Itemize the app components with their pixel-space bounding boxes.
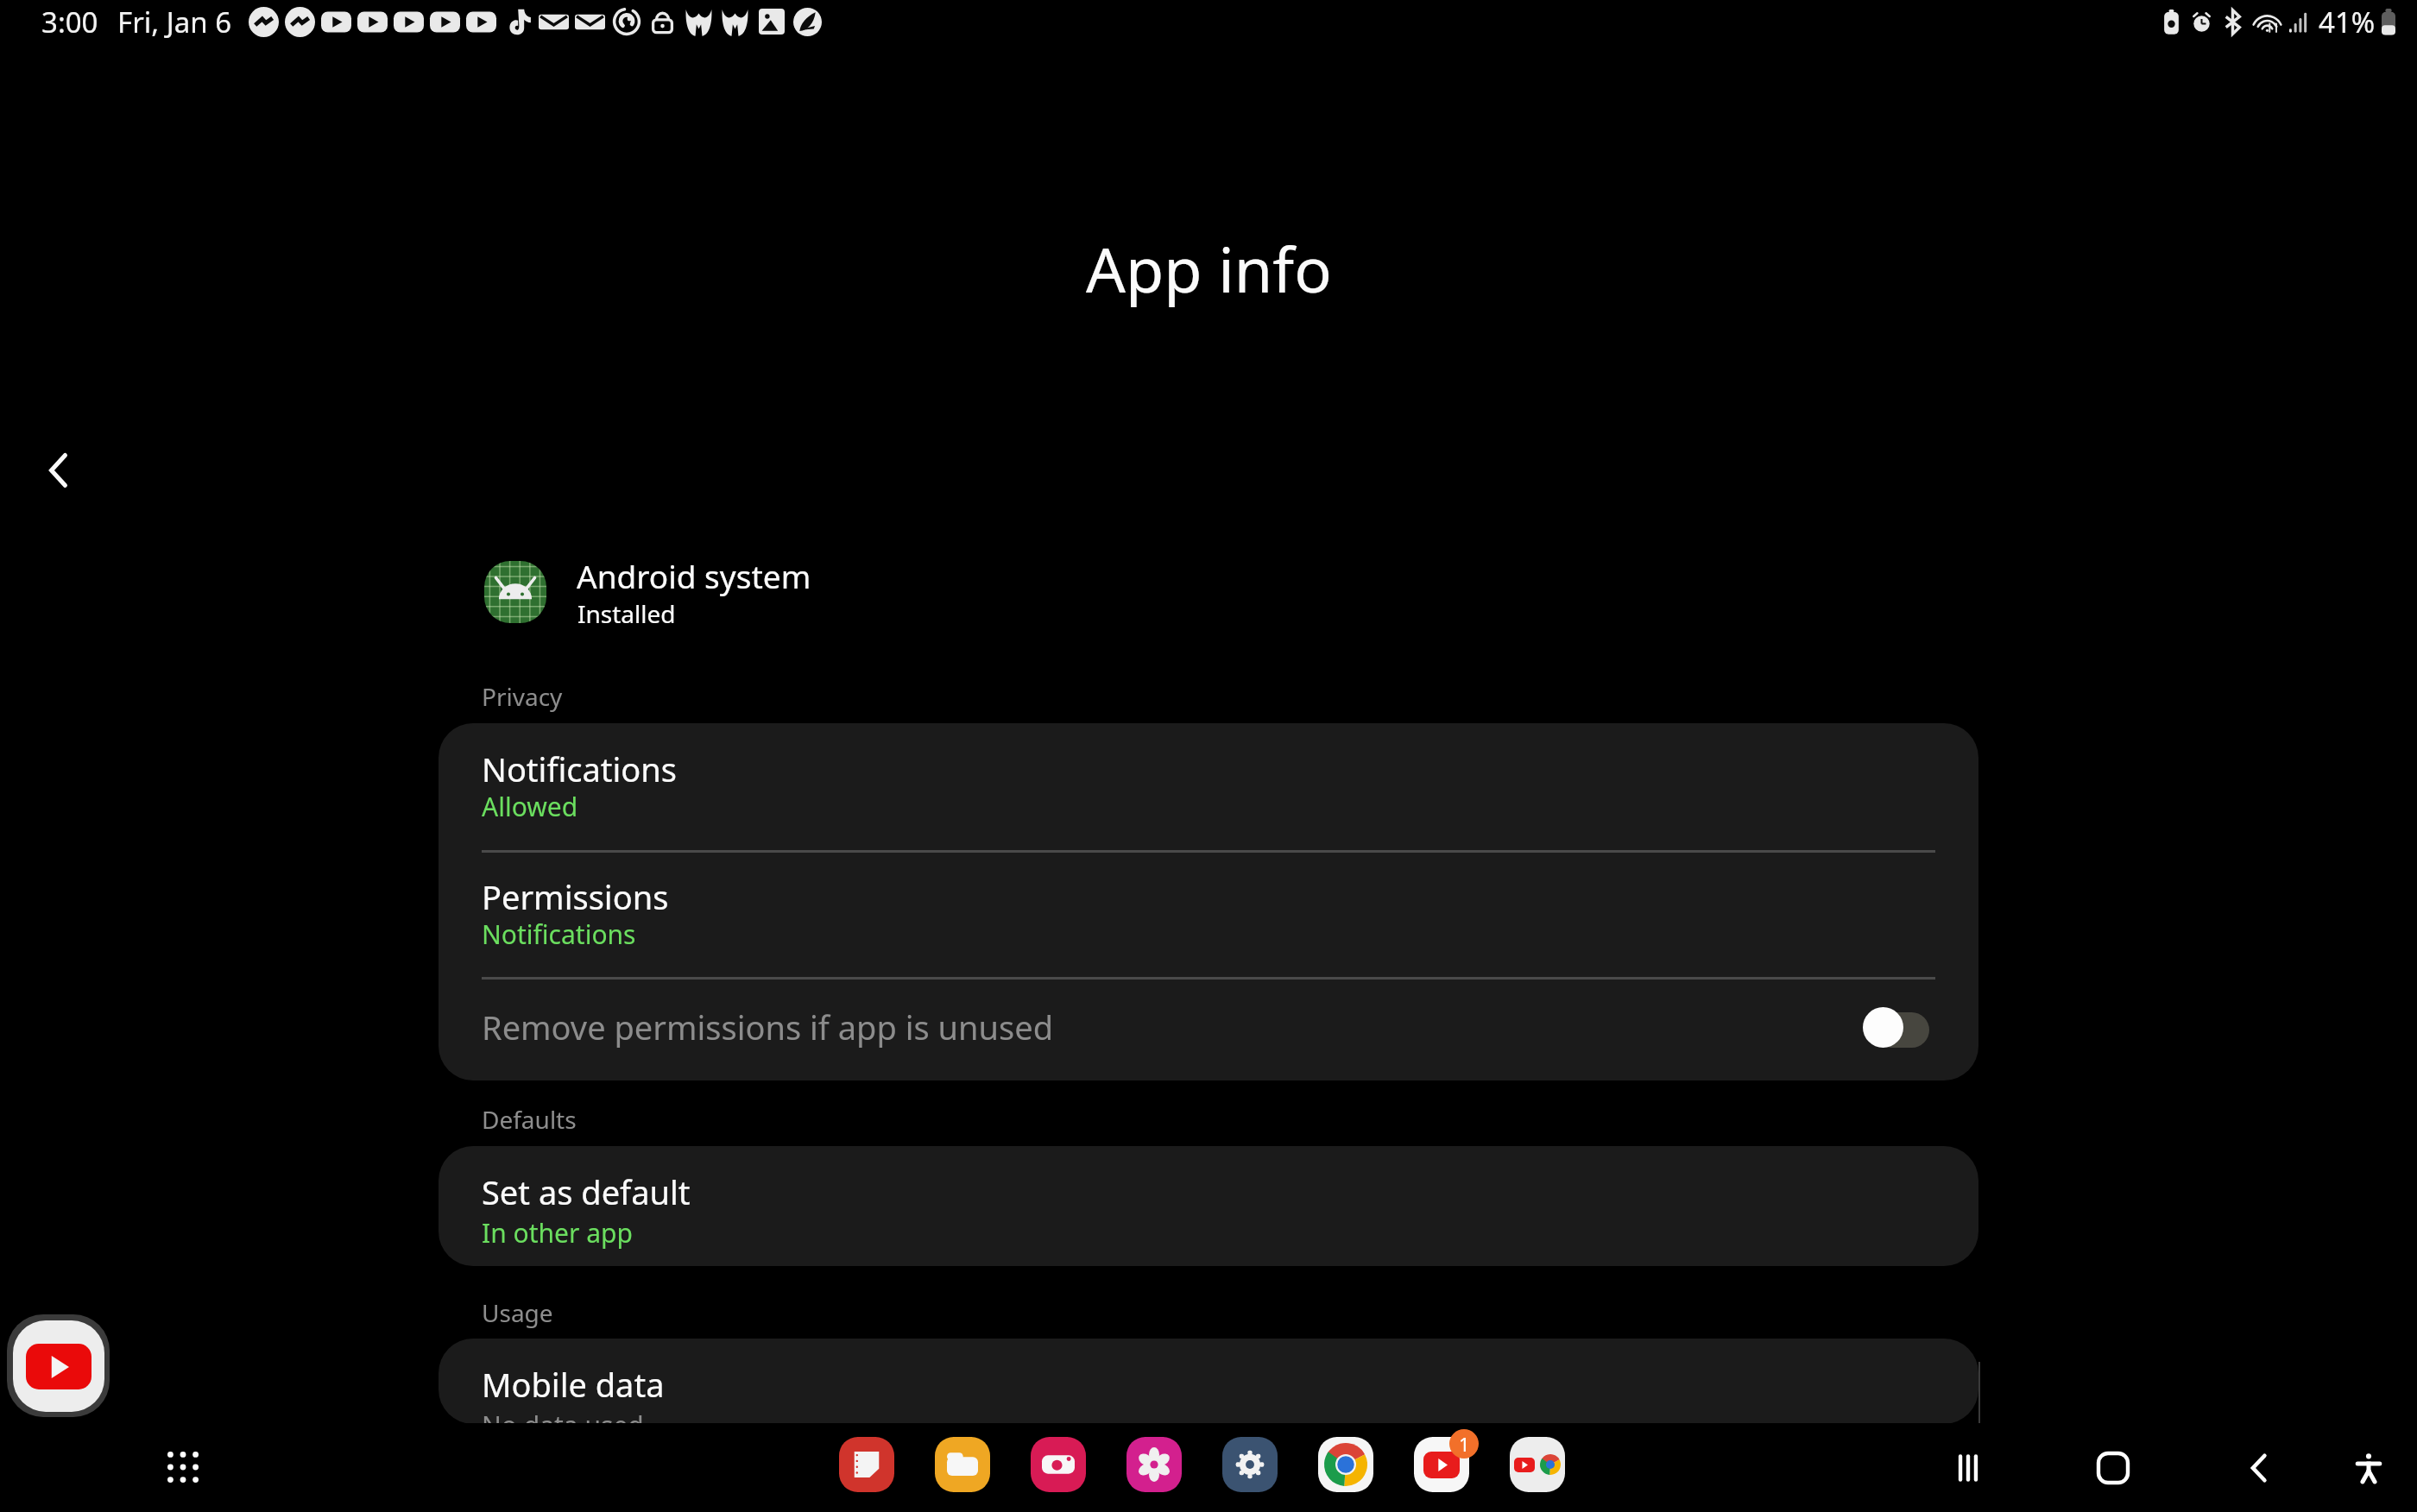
staticText: Defaults (482, 1103, 577, 1136)
button[interactable]: Set as default (439, 1146, 1978, 1266)
button[interactable]: Mobile data (439, 1339, 1978, 1424)
staticText: Fri, Jan 6 (117, 3, 232, 41)
staticText: No data used (482, 1408, 644, 1424)
button[interactable]: Settings (1222, 1437, 1278, 1492)
staticText: 3:00 (41, 3, 98, 41)
staticText: Allowed (482, 789, 578, 824)
staticText: Usage (482, 1296, 553, 1329)
button[interactable]: Permissions (439, 850, 1978, 977)
button[interactable]: Back (19, 432, 97, 509)
staticText: Notifications (482, 917, 636, 952)
staticText: Notifications (482, 747, 678, 791)
staticText: Remove permissions if app is unused (482, 1005, 1054, 1049)
button[interactable]: Chrome (1318, 1437, 1373, 1492)
button[interactable]: Notifications (439, 723, 1978, 850)
button[interactable]: Remove permissions if app is unused (439, 977, 1978, 1080)
button[interactable]: Gallery (1126, 1437, 1182, 1492)
button[interactable]: Back (2228, 1437, 2290, 1499)
staticText: Mobile data (482, 1362, 665, 1407)
button[interactable]: Folder (1510, 1437, 1565, 1492)
button[interactable]: Recent apps (1937, 1437, 1999, 1499)
staticText: Permissions (482, 874, 669, 919)
staticText: 41% (2319, 3, 2376, 41)
staticText: Privacy (482, 680, 563, 713)
staticText: Installed (577, 597, 676, 630)
button[interactable]: Samsung Notes (839, 1437, 894, 1492)
button[interactable]: Accessibility (2338, 1437, 2400, 1499)
staticText: Set as default (482, 1169, 691, 1214)
button[interactable]: YouTube bubble (7, 1314, 110, 1417)
staticText: Android system (577, 554, 811, 597)
button[interactable]: Remove permissions if app is unused (1863, 1007, 1930, 1048)
staticText: App info (1086, 226, 1332, 311)
button[interactable]: Home (2082, 1437, 2144, 1499)
button[interactable]: Camera (1031, 1437, 1086, 1492)
staticText: 1 (1459, 1431, 1470, 1457)
button[interactable]: YouTube (1414, 1437, 1469, 1492)
staticText: In other app (482, 1215, 633, 1251)
button[interactable]: Apps (148, 1433, 218, 1502)
button[interactable]: My Files (935, 1437, 990, 1492)
